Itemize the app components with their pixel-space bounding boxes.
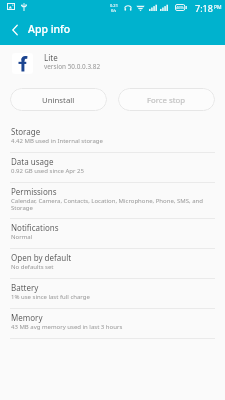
staticText: Permissions: [11, 186, 57, 197]
staticText: 4.42 MB used in Internal storage: [11, 137, 103, 145]
button[interactable]: Navigate up: [2, 15, 28, 45]
staticText: K/s: [111, 8, 117, 13]
staticText: App info: [28, 22, 71, 36]
staticText: 43 MB avg memory used in last 3 hours: [11, 323, 123, 331]
staticText: Notifications: [11, 222, 59, 233]
staticText: Uninstall: [42, 95, 75, 106]
staticText: Calendar, Camera, Contacts, Location, Mi…: [11, 197, 212, 212]
button[interactable]: Storage: [0, 123, 225, 153]
staticText: Storage: [11, 126, 41, 137]
staticText: Force stop: [147, 95, 186, 106]
button[interactable]: Permissions: [0, 183, 225, 219]
button[interactable]: Data usage: [0, 153, 225, 183]
staticText: 0.21: [110, 3, 118, 8]
staticText: Memory: [11, 312, 43, 323]
staticText: 46%: [176, 5, 184, 10]
staticText: version 50.0.0.3.82: [44, 62, 101, 71]
staticText: Battery: [11, 282, 39, 293]
staticText: 7:18: [195, 2, 213, 14]
button[interactable]: Memory: [0, 309, 225, 339]
button[interactable]: Uninstall: [10, 88, 107, 111]
staticText: Open by default: [11, 252, 72, 263]
staticText: Data usage: [11, 156, 54, 167]
staticText: 0.92 GB used since Apr 25: [11, 167, 84, 175]
staticText: PM: [214, 4, 222, 11]
staticText: Lite: [44, 52, 58, 63]
staticText: 1% use since last full charge: [11, 293, 90, 301]
button[interactable]: Force stop: [118, 88, 215, 111]
staticText: Normal: [11, 233, 33, 241]
button[interactable]: Battery: [0, 279, 225, 309]
staticText: No defaults set: [11, 263, 54, 271]
button[interactable]: Notifications: [0, 219, 225, 249]
button[interactable]: Open by default: [0, 249, 225, 279]
